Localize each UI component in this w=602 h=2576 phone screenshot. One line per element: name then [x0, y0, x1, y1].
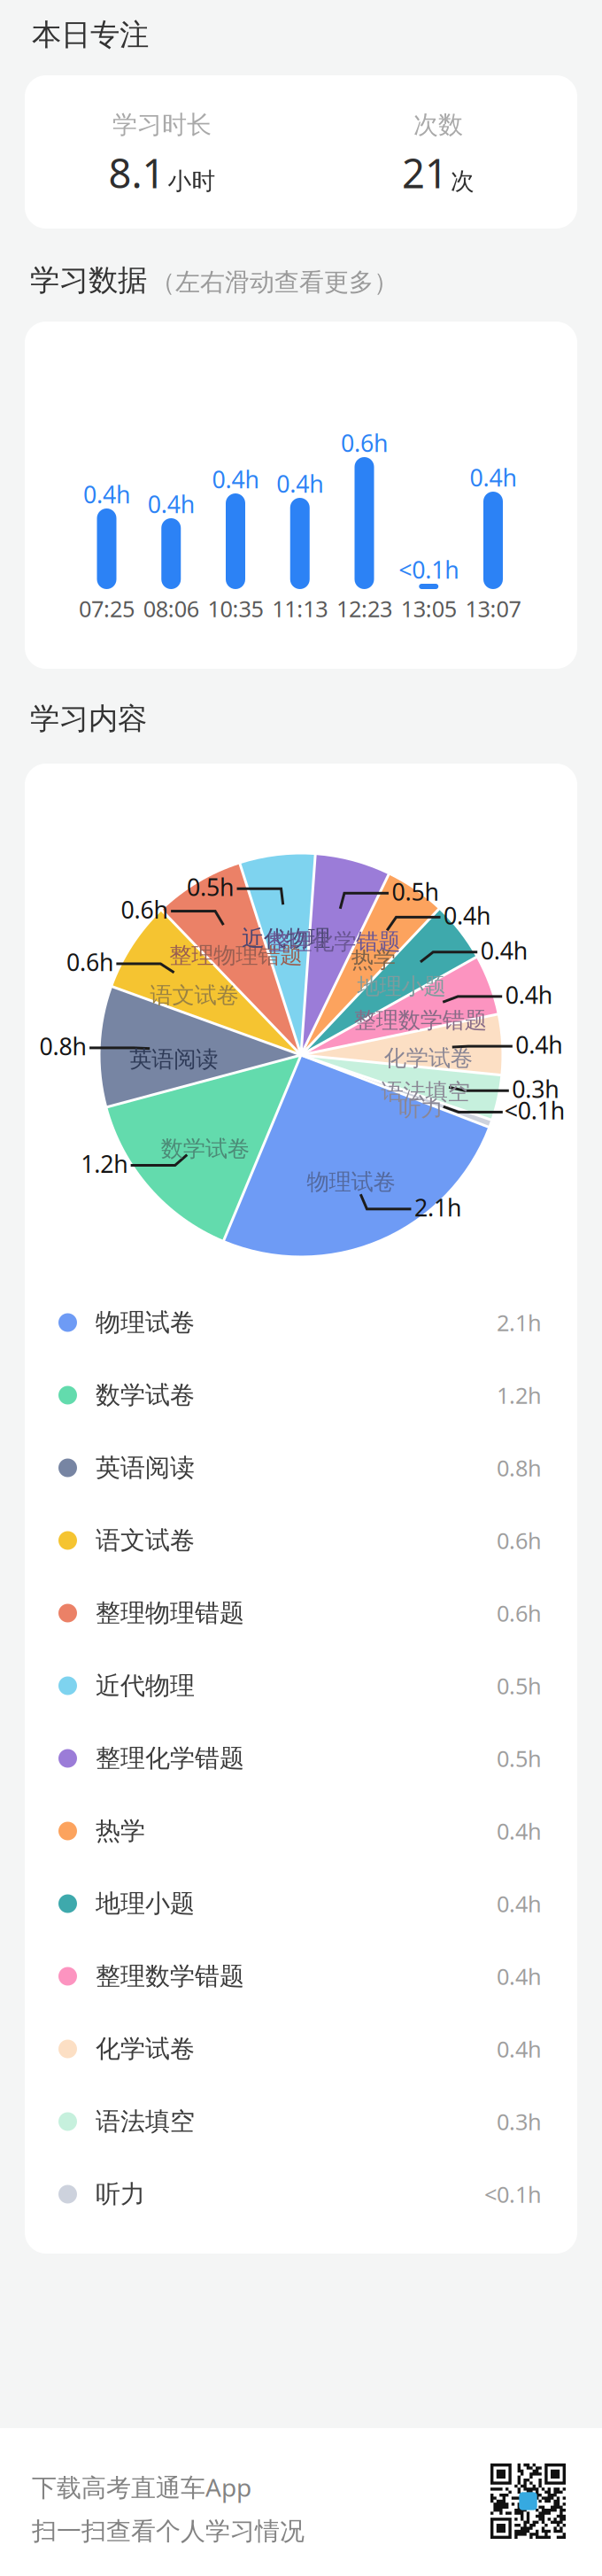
- staticText: 学习内容: [30, 701, 147, 737]
- staticText: （左右滑动查看更多）: [150, 267, 398, 298]
- staticText: 0.5h: [187, 871, 234, 903]
- staticText: 0.3h: [512, 1073, 559, 1105]
- staticText: 0.5h: [497, 1671, 542, 1701]
- staticText: 学习数据: [30, 262, 147, 298]
- staticText: 学习时长: [112, 110, 212, 140]
- button[interactable]: 语文试卷: [25, 1504, 577, 1577]
- staticText: 13:05: [401, 594, 457, 623]
- button[interactable]: 整理化学错题: [25, 1722, 577, 1795]
- staticText: 1.2h: [81, 1148, 128, 1179]
- staticText: 小时: [168, 167, 216, 196]
- staticText: 1.2h: [497, 1380, 542, 1410]
- staticText: 数学试卷: [96, 1380, 195, 1410]
- staticText: 2.1h: [497, 1308, 542, 1337]
- staticText: 整理数学错题: [354, 1006, 487, 1034]
- staticText: 物理试卷: [307, 1168, 395, 1196]
- staticText: 0.6h: [341, 427, 388, 459]
- staticText: 下载高考直通车App: [32, 2471, 251, 2504]
- staticText: 英语阅读: [130, 1046, 218, 1073]
- staticText: 0.4h: [276, 468, 323, 499]
- staticText: 近代物理: [242, 924, 330, 952]
- staticText: 整理数学错题: [96, 1961, 244, 1992]
- staticText: <0.1h: [504, 1095, 565, 1126]
- staticText: 0.4h: [470, 462, 517, 493]
- staticText: 0.6h: [66, 946, 113, 978]
- staticText: 0.4h: [148, 488, 195, 520]
- button[interactable]: 整理物理错题: [25, 1577, 577, 1649]
- staticText: 8.1: [108, 146, 165, 199]
- staticText: 语法填空: [381, 1078, 470, 1106]
- staticText: 0.6h: [497, 1598, 542, 1628]
- staticText: 0.4h: [497, 1816, 542, 1846]
- staticText: 0.6h: [497, 1526, 542, 1555]
- staticText: 语法填空: [96, 2106, 195, 2137]
- staticText: 语文试卷: [96, 1525, 195, 1556]
- staticText: 0.4h: [497, 1961, 542, 1991]
- staticText: <0.1h: [484, 2179, 542, 2209]
- staticText: 次: [451, 167, 475, 196]
- button[interactable]: 数学试卷: [25, 1359, 577, 1432]
- staticText: 0.4h: [212, 464, 259, 495]
- staticText: 热学: [96, 1816, 145, 1846]
- staticText: 0.3h: [497, 2107, 542, 2136]
- button[interactable]: 英语阅读: [25, 1432, 577, 1504]
- staticText: 数学试卷: [161, 1135, 249, 1162]
- staticText: 08:06: [143, 594, 199, 623]
- staticText: 13:07: [465, 594, 521, 623]
- staticText: 扫一扫查看个人学习情况: [32, 2516, 305, 2546]
- staticText: 听力: [399, 1094, 443, 1122]
- button[interactable]: 化学试卷: [25, 2013, 577, 2085]
- staticText: 近代物理: [96, 1671, 195, 1701]
- staticText: 0.4h: [480, 935, 527, 966]
- staticText: 0.4h: [83, 479, 130, 510]
- staticText: 0.5h: [497, 1743, 542, 1773]
- staticText: 0.4h: [444, 900, 490, 931]
- staticText: 0.4h: [516, 1029, 563, 1060]
- staticText: 英语阅读: [96, 1453, 195, 1483]
- staticText: 21: [402, 146, 448, 199]
- staticText: 10:35: [208, 594, 263, 623]
- button[interactable]: 近代物理: [25, 1649, 577, 1722]
- button[interactable]: 听力: [25, 2158, 577, 2231]
- button[interactable]: 热学: [25, 1795, 577, 1867]
- staticText: 0.5h: [392, 876, 439, 907]
- button[interactable]: 语法填空: [25, 2085, 577, 2158]
- staticText: 0.8h: [497, 1453, 542, 1483]
- staticText: 0.4h: [505, 979, 552, 1010]
- staticText: 2.1h: [414, 1192, 461, 1223]
- staticText: 地理小题: [96, 1888, 195, 1919]
- button[interactable]: 整理数学错题: [25, 1940, 577, 2013]
- staticText: 物理试卷: [96, 1307, 195, 1338]
- staticText: <0.1h: [399, 554, 459, 585]
- staticText: 0.6h: [121, 894, 168, 925]
- button[interactable]: 物理试卷: [25, 1286, 577, 1359]
- staticText: 0.8h: [39, 1030, 86, 1062]
- staticText: 整理物理错题: [96, 1598, 244, 1628]
- staticText: 0.4h: [497, 1889, 542, 1919]
- staticText: 语文试卷: [150, 982, 238, 1009]
- staticText: 化学试卷: [96, 2034, 195, 2064]
- staticText: 整理化学错题: [96, 1743, 244, 1774]
- staticText: 热学: [351, 946, 395, 974]
- staticText: 地理小题: [357, 973, 446, 1000]
- staticText: 11:13: [272, 594, 328, 623]
- staticText: 07:25: [79, 594, 135, 623]
- staticText: 次数: [413, 110, 463, 140]
- staticText: 听力: [96, 2179, 145, 2209]
- button[interactable]: 地理小题: [25, 1867, 577, 1940]
- staticText: 0.4h: [497, 2034, 542, 2064]
- staticText: 本日专注: [32, 17, 149, 53]
- staticText: 化学试卷: [384, 1044, 472, 1072]
- staticText: 整理化学错题: [268, 928, 400, 955]
- staticText: 12:23: [336, 594, 392, 623]
- staticText: 整理物理错题: [169, 942, 302, 969]
